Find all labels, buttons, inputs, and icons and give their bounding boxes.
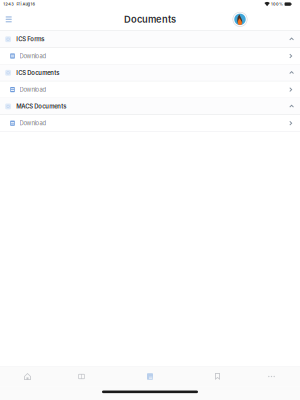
button[interactable]: Menu [0, 9, 17, 29]
button[interactable]: Download [0, 115, 300, 132]
staticText: MACS Documents [16, 103, 66, 110]
staticText: Documents [124, 14, 176, 25]
staticText: Download [20, 52, 47, 60]
staticText: 100% [271, 2, 283, 6]
button[interactable]: ICS Documents [0, 65, 300, 81]
button[interactable]: MACS Documents [0, 98, 300, 115]
button[interactable]: Bookmarks [192, 366, 243, 386]
staticText: ICS Documents [16, 69, 59, 76]
staticText: Download [20, 120, 47, 127]
staticText: ICS Forms [16, 36, 44, 43]
staticText: 12:43 [3, 2, 14, 6]
staticText: Fri Aug 16 [16, 2, 35, 6]
button[interactable]: ICS Forms [0, 31, 300, 48]
button[interactable]: Home [0, 366, 55, 386]
button[interactable]: Library [55, 366, 108, 386]
button[interactable]: Documents [108, 366, 192, 386]
button[interactable]: Download [0, 81, 300, 98]
staticText: Download [20, 86, 47, 93]
button[interactable]: Download [0, 48, 300, 65]
button[interactable]: Account [231, 9, 248, 29]
